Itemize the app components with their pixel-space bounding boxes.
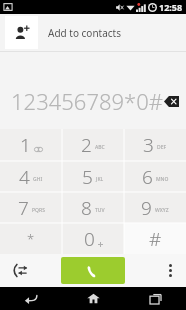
button[interactable]: Call log [0, 254, 40, 287]
button[interactable]: 3 [124, 129, 186, 161]
staticText: 0 [84, 226, 95, 252]
button[interactable]: 0 [62, 223, 124, 254]
staticText: 3 [143, 132, 154, 158]
button[interactable]: Call [61, 257, 125, 284]
button[interactable]: * [0, 223, 62, 254]
staticText: JKL [96, 176, 104, 183]
staticText: 4 [19, 164, 30, 190]
staticText: 12:58 [159, 1, 183, 13]
button[interactable]: 1 [0, 129, 62, 161]
button[interactable]: 5 [62, 161, 124, 192]
staticText: 5 [82, 164, 93, 190]
staticText: MNO [156, 176, 169, 183]
staticText: * [27, 230, 35, 248]
staticText: PQRS [32, 207, 45, 214]
staticText: GHI [33, 176, 43, 183]
staticText: 9 [141, 195, 152, 221]
button[interactable]: # [124, 223, 186, 254]
button[interactable]: 2 [62, 129, 124, 161]
staticText: Add to contacts [48, 26, 121, 40]
button[interactable]: 4 [0, 161, 62, 192]
staticText: 2 [81, 132, 92, 158]
staticText: 123456789*0# [11, 86, 163, 116]
button[interactable]: Back [0, 287, 62, 310]
staticText: 1 [20, 132, 31, 158]
staticText: WXYZ [155, 207, 169, 214]
button[interactable]: Add to contacts [0, 14, 186, 51]
staticText: # [149, 226, 162, 252]
staticText: DEF [157, 144, 167, 151]
button[interactable]: 9 [124, 192, 186, 223]
staticText: TUV [95, 207, 105, 214]
button[interactable]: Recent apps [124, 287, 186, 310]
button[interactable]: More options [154, 254, 186, 287]
staticText: 6 [142, 164, 153, 190]
staticText: ABC [95, 144, 105, 151]
button[interactable]: 6 [124, 161, 186, 192]
staticText: 8 [81, 195, 92, 221]
button[interactable]: 8 [62, 192, 124, 223]
button[interactable]: Home [62, 287, 124, 310]
staticText: 7 [18, 195, 29, 221]
button[interactable]: Backspace [156, 88, 186, 114]
button[interactable]: 7 [0, 192, 62, 223]
